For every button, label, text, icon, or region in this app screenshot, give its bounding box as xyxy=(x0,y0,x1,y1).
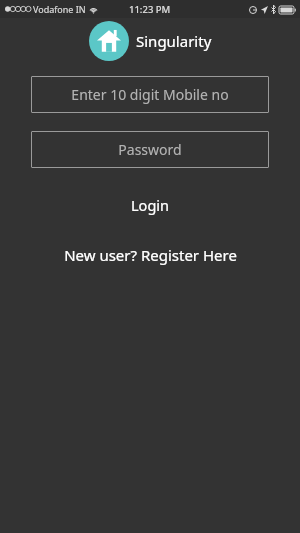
other: Home xyxy=(97,29,121,53)
button[interactable]: Password xyxy=(31,131,269,168)
staticText: Login xyxy=(131,195,169,215)
staticText: Enter 10 digit Mobile no xyxy=(71,85,229,104)
staticText: Singularity xyxy=(136,31,212,51)
staticText: New user? Register Here xyxy=(64,245,237,265)
button[interactable]: Enter 10 digit Mobile no xyxy=(31,76,269,113)
staticText: Vodafone IN xyxy=(33,3,86,15)
button[interactable]: Login xyxy=(0,193,300,217)
staticText: Password xyxy=(118,140,182,159)
staticText: 11:23 PM xyxy=(129,3,171,16)
button[interactable]: New user? Register Here xyxy=(0,243,300,267)
